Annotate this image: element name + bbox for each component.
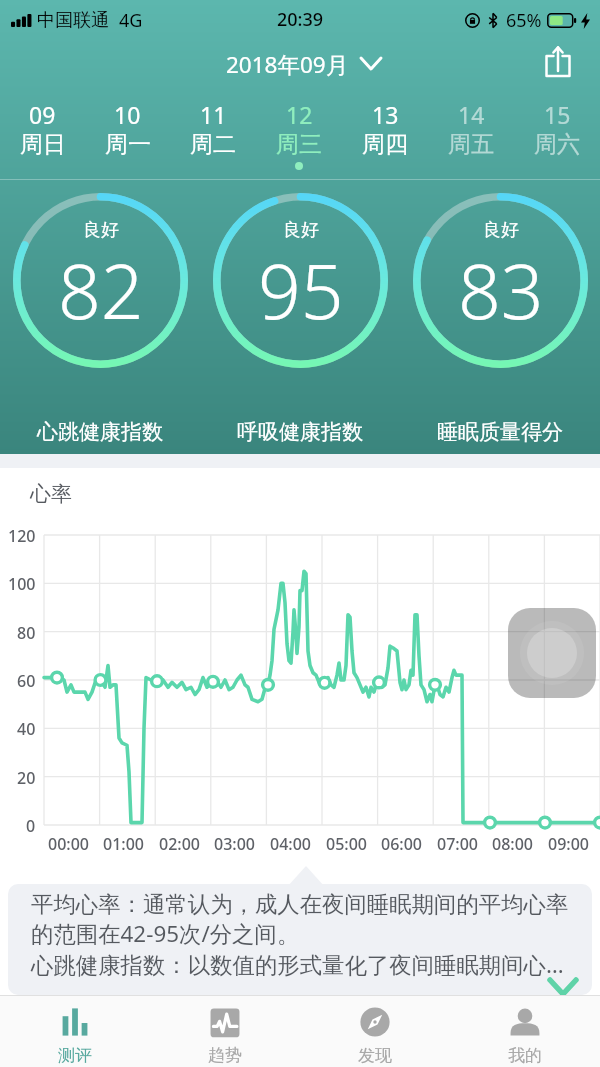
staticText: 周五 [448,130,494,159]
staticText: 趋势 [208,1045,242,1066]
staticText: 82 [58,239,144,341]
staticText: 03:00 [214,833,255,855]
staticText: 40 [17,718,36,740]
staticText: 呼吸健康指数 [237,419,363,445]
staticText: 发现 [358,1045,392,1066]
staticText: 95 [258,239,344,341]
staticText: 01:00 [103,833,144,855]
staticText: 我的 [508,1045,542,1066]
button[interactable]: 12 [256,96,342,178]
staticText: 周四 [362,130,408,159]
staticText: 12 [286,99,313,130]
staticText: 11 [200,99,227,130]
staticText: 周日 [20,130,66,159]
staticText: 良好 [283,219,319,242]
staticText: 100 [8,573,36,595]
staticText: 09:00 [548,833,589,855]
staticText: 120 [8,525,36,547]
staticText: 04:00 [270,833,311,855]
button[interactable]: 11 [170,96,256,178]
button[interactable]: AssistiveTouch [508,608,596,698]
staticText: 周三 [276,130,322,159]
staticText: 中国联通 [37,9,109,32]
staticText: 20:39 [277,7,324,32]
staticText: 65% [506,8,542,33]
button[interactable]: 09 [0,96,85,178]
button[interactable]: 良好 [213,193,388,368]
staticText: 83 [458,239,544,341]
button[interactable]: 13 [342,96,428,178]
staticText: 07:00 [437,833,478,855]
button[interactable]: 良好 [13,193,188,368]
button[interactable]: 良好 [413,193,588,368]
staticText: 80 [17,622,36,644]
staticText: 良好 [83,219,119,242]
button[interactable]: 15 [514,96,600,178]
staticText: 00:00 [48,833,89,855]
staticText: 周六 [534,130,580,159]
staticText: 2018年09月 [226,49,349,80]
staticText: 心率 [30,481,72,507]
staticText: 06:00 [381,833,422,855]
staticText: 09 [29,99,56,130]
button[interactable]: 14 [428,96,514,178]
staticText: 心跳健康指数：以数值的形式量化了夜间睡眠期间心… [31,949,564,980]
button[interactable]: 2018年09月 [226,49,384,80]
button[interactable]: 我的 [450,996,600,1067]
button[interactable]: 10 [85,96,170,178]
staticText: 4G [119,8,143,33]
button[interactable]: 趋势 [150,996,300,1067]
staticText: 心跳健康指数 [37,419,163,445]
button[interactable]: 发现 [300,996,450,1067]
button[interactable]: Share [534,33,582,81]
staticText: 02:00 [159,833,200,855]
staticText: 良好 [483,219,519,242]
staticText: 13 [372,99,399,130]
staticText: 平均心率：通常认为，成人在夜间睡眠期间的平均心率 [31,890,569,918]
staticText: 05:00 [326,833,367,855]
staticText: 08:00 [492,833,533,855]
staticText: 10 [114,99,141,130]
button[interactable]: 平均心率：通常认为，成人在夜间睡眠期间的平均心率 [8,884,592,995]
staticText: 0 [26,815,36,837]
staticText: 测评 [58,1045,92,1066]
staticText: 60 [17,670,36,692]
staticText: 睡眠质量得分 [437,419,563,445]
staticText: 14 [458,99,485,130]
staticText: 的范围在42-95次/分之间。 [31,918,300,949]
staticText: 20 [17,767,36,789]
staticText: 15 [544,99,571,130]
staticText: 周一 [105,130,151,159]
button[interactable]: 测评 [0,996,150,1067]
staticText: 周二 [190,130,236,159]
